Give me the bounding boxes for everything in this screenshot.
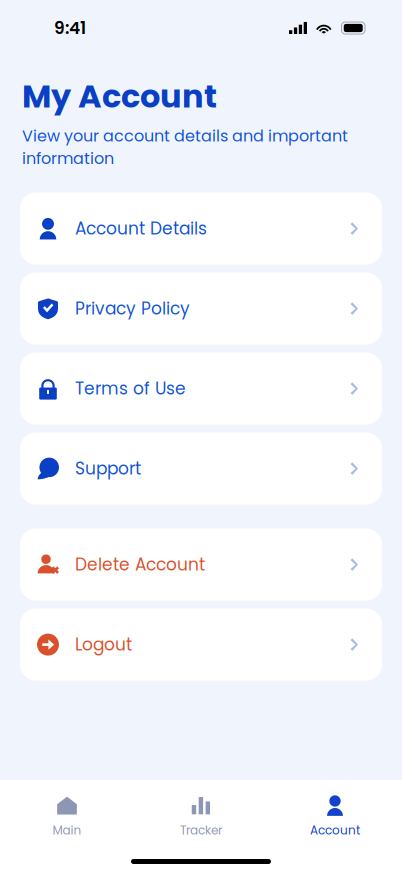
staticText: Terms of Use [75,377,186,400]
button[interactable]: Logout [20,609,382,681]
button[interactable]: Main [0,795,134,839]
staticText: Account [310,822,360,839]
staticText: Main [52,822,81,839]
staticText: Account Details [75,217,207,240]
button[interactable]: Tracker [134,795,268,839]
staticText: 9:41 [54,16,86,40]
staticText: Privacy Policy [75,297,190,320]
staticText: Logout [75,633,132,656]
button[interactable]: Terms of Use [20,353,382,425]
staticText: View your account details and important … [22,125,348,170]
staticText: Delete Account [75,553,205,576]
staticText: Support [75,457,141,480]
button[interactable]: Support [20,433,382,505]
button[interactable]: Delete Account [20,529,382,601]
staticText: Tracker [180,822,222,839]
staticText: My Account [22,74,217,119]
button[interactable]: Account Details [20,193,382,265]
button[interactable]: Privacy Policy [20,273,382,345]
button[interactable]: Account [268,795,402,839]
